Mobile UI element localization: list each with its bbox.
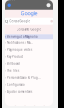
staticText: Personalitzacio & Plug... [7, 76, 41, 79]
staticText: Q [5, 19, 8, 24]
button[interactable]: Google [7, 3, 11, 7]
staticText: Pàgina que visites [7, 48, 32, 51]
staticText: Configuracio [7, 83, 25, 86]
button[interactable]: Account [46, 3, 50, 7]
staticText: Notifications i Ma... [7, 41, 33, 44]
staticText: Benvingut a Magnolia [7, 35, 37, 38]
staticText: The Tiles [7, 69, 19, 72]
staticText: Cerca amb Google [16, 28, 41, 31]
staticText: 9:41 [8, 0, 15, 1]
staticText: Google [20, 10, 37, 17]
staticText: Billboard [7, 62, 20, 65]
staticText: Ajuda i comentaris [7, 90, 32, 93]
staticText: Key Product [7, 55, 23, 58]
staticText: Cerca a Google [9, 19, 30, 23]
